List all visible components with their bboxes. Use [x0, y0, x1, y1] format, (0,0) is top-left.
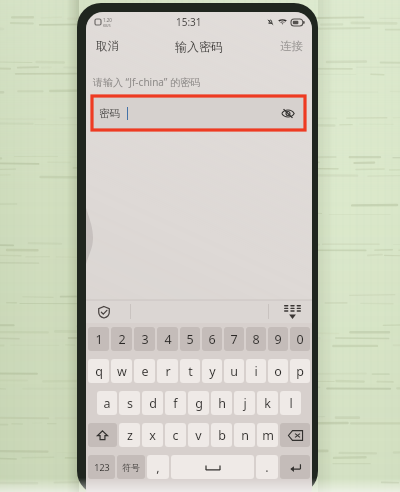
- button[interactable]: k: [257, 391, 278, 415]
- button[interactable]: u: [224, 359, 244, 383]
- staticText: h: [218, 395, 226, 412]
- button[interactable]: 7: [224, 327, 244, 351]
- button[interactable]: f: [165, 391, 186, 415]
- staticText: 6: [208, 331, 216, 348]
- button[interactable]: 8: [246, 327, 266, 351]
- button[interactable]: i: [246, 359, 266, 383]
- button[interactable]: o: [268, 359, 288, 383]
- button[interactable]: 9: [268, 327, 288, 351]
- staticText: m: [262, 427, 274, 444]
- button[interactable]: 3: [134, 327, 155, 351]
- staticText: .: [265, 459, 269, 476]
- staticText: o: [274, 363, 282, 380]
- staticText: 1.20: [103, 17, 112, 23]
- staticText: l: [289, 395, 293, 412]
- staticText: n: [241, 427, 249, 444]
- button[interactable]: b: [211, 423, 232, 447]
- staticText: d: [149, 395, 157, 412]
- staticText: 请输入 “Jf-china” 的密码: [93, 75, 201, 89]
- button[interactable]: w: [111, 359, 132, 383]
- button[interactable]: 4: [157, 327, 178, 351]
- staticText: r: [165, 363, 171, 380]
- staticText: v: [195, 427, 202, 444]
- staticText: x: [149, 427, 156, 444]
- button[interactable]: e: [134, 359, 155, 383]
- staticText: 密码: [99, 107, 120, 120]
- button[interactable]: p: [290, 359, 310, 383]
- button[interactable]: c: [165, 423, 186, 447]
- button[interactable]: h: [211, 391, 232, 415]
- button[interactable]: l: [280, 391, 301, 415]
- staticText: p: [296, 363, 304, 380]
- staticText: w: [117, 363, 127, 380]
- button[interactable]: Shift: [88, 423, 117, 447]
- staticText: s: [127, 395, 133, 412]
- button[interactable]: m: [257, 423, 278, 447]
- staticText: ,: [156, 459, 160, 476]
- staticText: 7: [230, 331, 238, 348]
- staticText: 0: [296, 331, 304, 348]
- button[interactable]: Security: [98, 306, 110, 318]
- staticText: c: [172, 427, 179, 444]
- staticText: y: [209, 363, 216, 380]
- staticText: i: [254, 363, 258, 380]
- button[interactable]: Show password: [281, 108, 295, 119]
- staticText: 8: [252, 331, 260, 348]
- button[interactable]: y: [202, 359, 222, 383]
- button[interactable]: 1: [88, 327, 109, 351]
- button[interactable]: s: [119, 391, 140, 415]
- staticText: 连接: [280, 39, 303, 53]
- staticText: 3: [141, 331, 149, 348]
- staticText: 1: [95, 331, 103, 348]
- staticText: 符号: [122, 462, 140, 473]
- button[interactable]: v: [188, 423, 209, 447]
- staticText: g: [195, 395, 203, 412]
- button[interactable]: g: [188, 391, 209, 415]
- button[interactable]: 0: [290, 327, 310, 351]
- staticText: KB/S: [103, 23, 111, 28]
- button[interactable]: n: [234, 423, 255, 447]
- button[interactable]: Delete: [280, 423, 310, 447]
- staticText: z: [127, 427, 133, 444]
- button[interactable]: .: [256, 455, 278, 479]
- button[interactable]: Enter: [280, 455, 310, 479]
- staticText: b: [218, 427, 226, 444]
- staticText: a: [103, 395, 111, 412]
- button[interactable]: a: [97, 391, 117, 415]
- button[interactable]: ,: [147, 455, 169, 479]
- staticText: j: [243, 395, 247, 412]
- button[interactable]: 5: [180, 327, 200, 351]
- button[interactable]: x: [142, 423, 163, 447]
- staticText: 输入密码: [175, 39, 223, 54]
- button[interactable]: Hide keyboard: [284, 305, 301, 319]
- button[interactable]: q: [88, 359, 109, 383]
- staticText: t: [188, 363, 193, 380]
- button[interactable]: 6: [202, 327, 222, 351]
- button[interactable]: z: [119, 423, 140, 447]
- button[interactable]: 连接: [273, 34, 312, 58]
- staticText: 123: [94, 461, 110, 473]
- staticText: k: [264, 395, 271, 412]
- button[interactable]: j: [234, 391, 255, 415]
- button[interactable]: 取消: [86, 34, 126, 58]
- button[interactable]: 2: [111, 327, 132, 351]
- button[interactable]: Space: [171, 455, 254, 479]
- staticText: 5: [186, 331, 194, 348]
- button[interactable]: 符号: [117, 455, 145, 479]
- staticText: f: [173, 395, 178, 412]
- button[interactable]: 123: [88, 455, 115, 479]
- staticText: 4: [164, 331, 172, 348]
- button[interactable]: r: [157, 359, 178, 383]
- button[interactable]: t: [180, 359, 200, 383]
- staticText: e: [141, 363, 149, 380]
- staticText: 2: [118, 331, 126, 348]
- button[interactable]: d: [142, 391, 163, 415]
- staticText: u: [230, 363, 238, 380]
- staticText: 取消: [96, 39, 119, 53]
- staticText: 9: [274, 331, 282, 348]
- staticText: 15:31: [176, 15, 202, 29]
- button[interactable]: 密码: [92, 96, 305, 130]
- staticText: q: [95, 363, 103, 380]
